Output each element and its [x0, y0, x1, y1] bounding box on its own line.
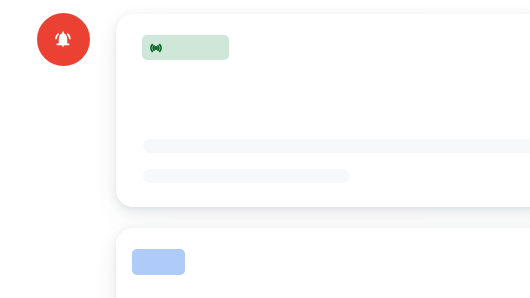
button[interactable]: Tag	[116, 228, 530, 298]
button[interactable]: Tag	[132, 249, 185, 275]
button[interactable]: Notifications	[37, 13, 90, 66]
button[interactable]: Live broadcast	[142, 35, 229, 60]
button[interactable]: Live broadcast	[116, 14, 530, 207]
